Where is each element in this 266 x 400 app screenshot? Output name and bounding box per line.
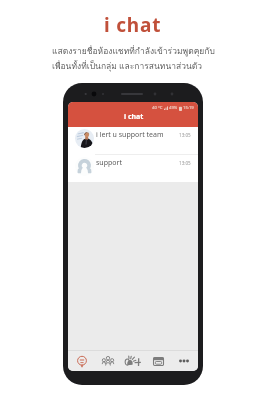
staticText: i lert u support team [96, 130, 164, 140]
button[interactable]: Groups [97, 351, 119, 371]
staticText: เพื่อนทั้งที่เป็นกลุ่ม และการสนทนาส่วนตั… [52, 59, 203, 73]
button[interactable]: Chats [71, 351, 93, 371]
staticText: 40 °C [152, 105, 163, 111]
button[interactable]: New chat [122, 351, 144, 371]
button[interactable]: i lert u support team [68, 127, 198, 154]
button[interactable]: More options [173, 351, 195, 371]
staticText: 15:19 [183, 105, 194, 111]
staticText: i chat [104, 12, 162, 38]
button[interactable]: support [68, 155, 198, 182]
staticText: 13:05 [179, 160, 191, 166]
button[interactable]: Calendar [147, 351, 169, 371]
staticText: 13:05 [179, 132, 191, 138]
staticText: i chat [124, 112, 144, 122]
staticText: support [96, 158, 122, 168]
staticText: 49% [169, 105, 178, 111]
staticText: แสดงรายชื่อห้องแชทที่กำลังเข้าร่วมพูดคุย… [52, 44, 215, 58]
